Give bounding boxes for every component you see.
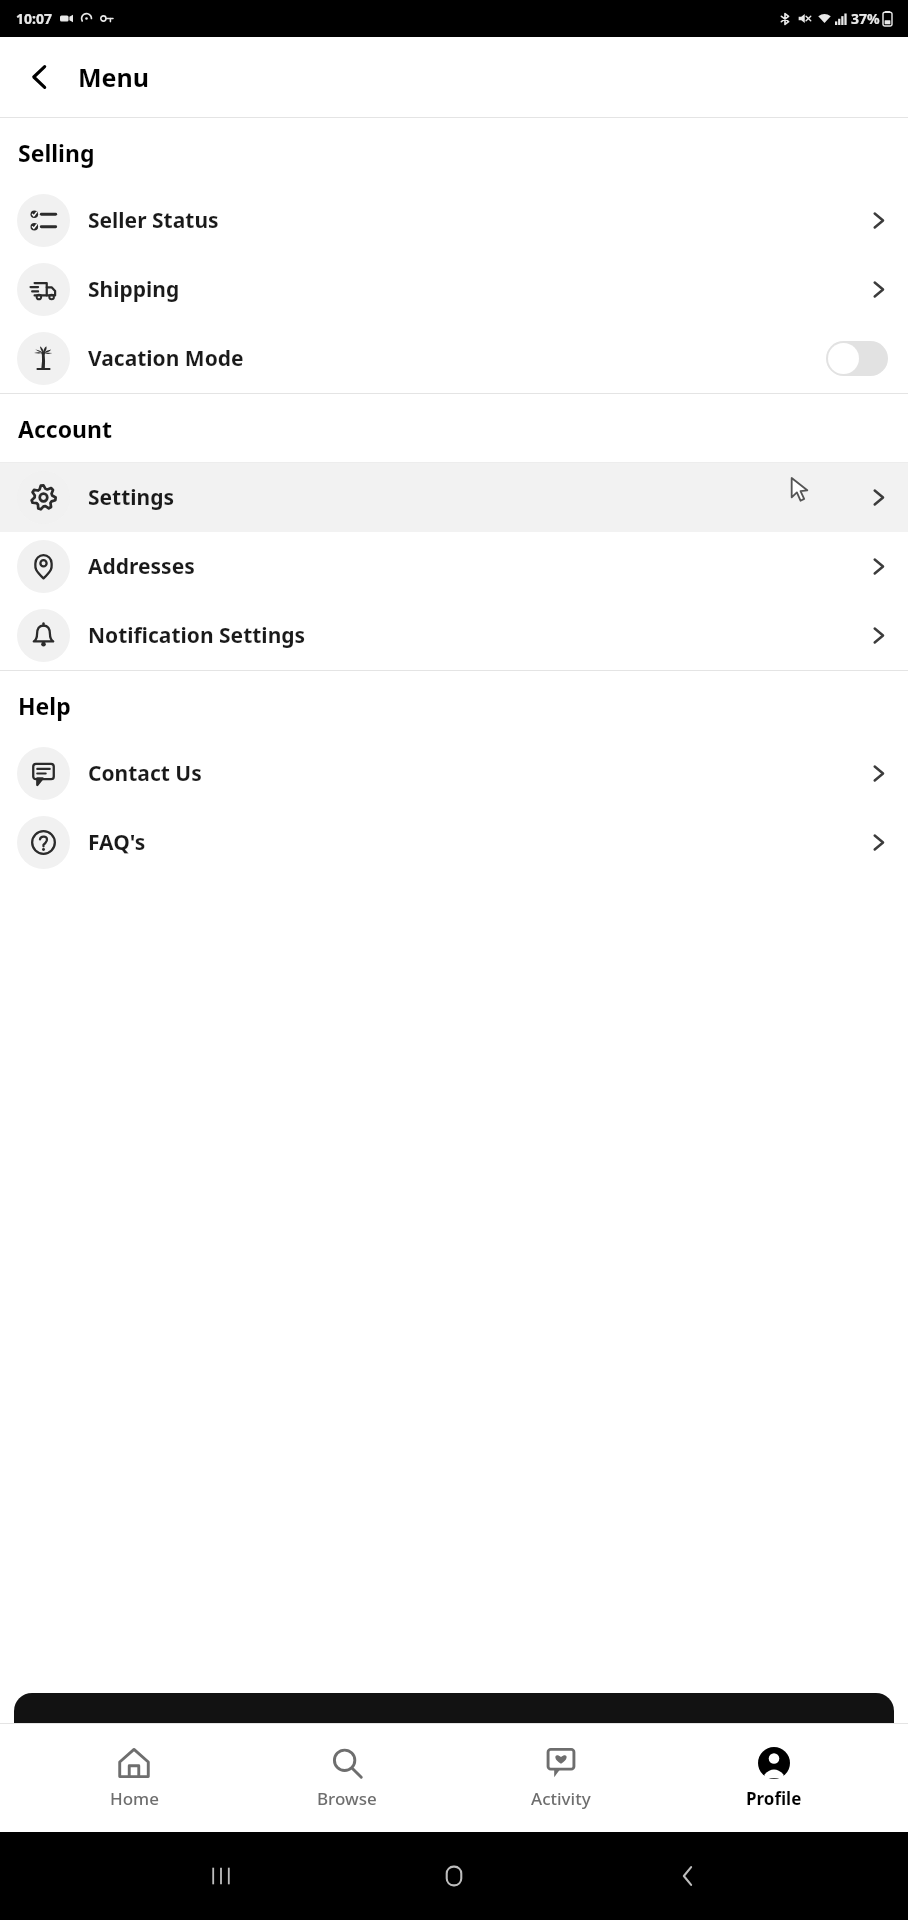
- button[interactable]: Notification Settings: [0, 601, 908, 670]
- button[interactable]: FAQ's: [0, 808, 908, 877]
- staticText: 10:07: [16, 9, 52, 28]
- staticText: Addresses: [88, 552, 195, 581]
- staticText: Account: [18, 413, 112, 444]
- staticText: Activity: [531, 1787, 591, 1810]
- other: Home: [441, 1863, 467, 1889]
- button[interactable]: Addresses: [0, 532, 908, 601]
- other: Back: [675, 1863, 701, 1889]
- other: Recents: [208, 1863, 234, 1889]
- staticText: Vacation Mode: [88, 344, 244, 373]
- staticText: Browse: [317, 1787, 377, 1810]
- staticText: Profile: [746, 1787, 802, 1810]
- button[interactable]: Contact Us: [0, 739, 908, 808]
- staticText: Notification Settings: [88, 621, 306, 650]
- button[interactable]: Home: [54, 1724, 214, 1832]
- staticText: Contact Us: [88, 759, 202, 788]
- staticText: Settings: [88, 483, 175, 512]
- button[interactable]: Seller Status: [0, 186, 908, 255]
- button[interactable]: Browse: [267, 1724, 427, 1832]
- staticText: Shipping: [88, 275, 180, 304]
- staticText: Selling: [18, 137, 95, 168]
- staticText: Help: [18, 690, 71, 721]
- button[interactable]: Back: [12, 49, 68, 105]
- button[interactable]: Vacation Mode toggle: [826, 341, 888, 376]
- staticText: FAQ's: [88, 828, 146, 857]
- staticText: 37%: [851, 9, 880, 28]
- button[interactable]: Activity: [481, 1724, 641, 1832]
- staticText: Menu: [78, 60, 150, 94]
- staticText: Seller Status: [88, 206, 219, 235]
- button[interactable]: Settings: [0, 463, 908, 532]
- staticText: Home: [110, 1787, 159, 1810]
- button[interactable]: Shipping: [0, 255, 908, 324]
- button[interactable]: Vacation Mode: [0, 324, 908, 393]
- button[interactable]: Profile: [694, 1724, 854, 1832]
